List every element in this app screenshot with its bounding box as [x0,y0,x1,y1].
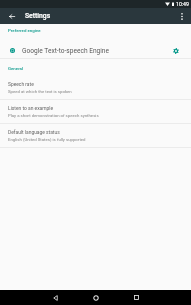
button[interactable]: Default language status [0,124,191,147]
staticText: General [8,66,24,71]
staticText: English (United States) is fully support… [8,137,86,142]
button[interactable]: More options [172,8,191,24]
staticText: Google Text-to-speech Engine [22,47,110,55]
button[interactable]: Home [88,290,103,305]
staticText: Speed at which the text is spoken [8,89,72,94]
staticText: 10:49 [176,1,189,7]
staticText: Preferred engine [8,28,41,33]
staticText: Play a short demonstration of speech syn… [8,113,99,118]
button[interactable]: Google Text-to-speech Engine [0,41,191,60]
staticText: Listen to an example [8,105,54,111]
button[interactable]: Speech rate [0,76,191,99]
staticText: Speech rate [8,81,34,87]
button[interactable]: Navigate up [0,8,23,24]
button[interactable]: Recent apps [129,290,144,305]
staticText: Default language status [8,129,60,135]
staticText: Settings [25,12,51,20]
button[interactable]: Back [48,290,63,305]
button[interactable]: Engine settings [168,43,184,59]
button[interactable]: Listen to an example [0,100,191,123]
